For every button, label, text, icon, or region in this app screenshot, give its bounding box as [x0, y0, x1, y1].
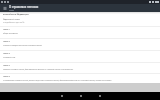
staticText: Глава 4 — [3, 64, 10, 67]
staticText: О страховых пенсиях — [9, 5, 39, 9]
button[interactable]: Глава 5 — [0, 73, 160, 84]
staticText: Главы — [9, 9, 14, 11]
button[interactable]: Home — [71, 92, 90, 100]
staticText: Глава 5 — [3, 75, 10, 78]
staticText: от 28 декабря 2013 года N 400-ФЗ — [3, 22, 25, 24]
button[interactable]: Глава 4 — [0, 62, 160, 74]
staticText: РОССИЙСКАЯ ФЕДЕРАЦИЯ — [3, 13, 29, 16]
staticText: Глава 2 — [3, 40, 10, 43]
button[interactable]: Глава 1 — [0, 26, 160, 38]
button[interactable]: Глава 3 — [0, 50, 160, 62]
staticText: Общие положения — [3, 32, 18, 34]
staticText: Размеры страховых пенсий, фиксированной … — [3, 68, 74, 70]
staticText: Глава 1 — [3, 28, 10, 31]
button[interactable]: Глава 2 — [0, 38, 160, 50]
button[interactable]: Navigate up — [0, 4, 9, 12]
staticText: Страховой стаж — [3, 56, 16, 58]
staticText: Глава 3 — [3, 52, 10, 55]
button[interactable]: Recent apps — [90, 92, 109, 100]
staticText: Условия и порядок назначения страховых п… — [3, 44, 42, 46]
button[interactable]: Back — [52, 92, 71, 100]
staticText: Установление страховых пенсий, выплата и… — [3, 79, 112, 81]
staticText: ФЕДЕРАЛЬНЫЙ ЗАКОН — [3, 18, 20, 20]
